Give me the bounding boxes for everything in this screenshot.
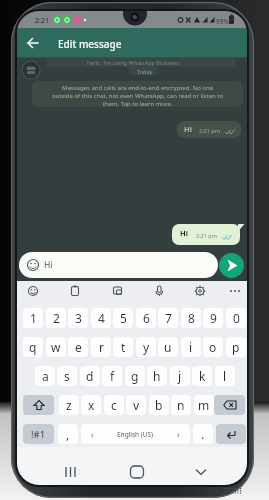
button[interactable]: g [125,366,145,386]
button[interactable]: k [192,366,212,386]
button[interactable]: ‹ [81,424,190,444]
staticText: 3 [75,310,82,326]
button[interactable] [192,283,208,299]
button[interactable]: 6 [136,308,156,328]
button[interactable]: 3 [68,308,88,328]
button[interactable]: Hi [19,252,218,278]
staticText: z [66,397,72,413]
staticText: Messages and calls are end-to-end encryp… [32,84,243,107]
staticText: u [164,339,172,355]
button[interactable]: 2 [46,308,66,328]
button[interactable]: b [149,395,169,415]
button[interactable]: m [194,395,214,415]
button[interactable]: 4 [91,308,111,328]
button[interactable]: e [68,337,88,357]
button[interactable] [216,424,246,444]
button[interactable]: t [113,337,133,357]
button[interactable]: 5 [113,308,133,328]
staticText: 2:21 pm [196,232,217,239]
staticText: f [110,368,115,384]
staticText: 4 [98,310,105,326]
staticText: v [133,397,140,413]
button[interactable]: a [35,366,55,386]
button[interactable] [193,465,209,481]
staticText: j [178,368,182,384]
button[interactable] [214,395,245,415]
button[interactable]: c [104,395,124,415]
button[interactable]: d [80,366,100,386]
button[interactable] [227,283,243,299]
staticText: Hi [180,228,188,238]
button[interactable]: l [215,366,235,386]
staticText: m [198,397,210,413]
button[interactable]: . [193,424,213,444]
staticText: a [42,368,49,384]
button[interactable]: q [23,337,43,357]
staticText: 7 [165,310,172,326]
button[interactable]: 0 [226,308,246,328]
button[interactable] [151,283,167,299]
staticText: Hello, I'm using WhatsApp Business. [87,59,181,66]
button[interactable]: p [226,337,246,357]
staticText: 99% [216,17,229,26]
staticText: Hi [44,259,53,271]
button[interactable] [25,283,41,299]
button[interactable]: i [181,337,201,357]
staticText: 9 [210,310,217,326]
button[interactable] [110,283,126,299]
button[interactable]: , [58,424,78,444]
button[interactable]: r [91,337,111,357]
button[interactable]: j [170,366,190,386]
staticText: r [99,339,104,355]
staticText: h [153,368,161,384]
button[interactable]: !#1 [23,424,54,444]
button[interactable]: w [46,337,66,357]
staticText: 5 [120,310,127,326]
button[interactable]: f [102,366,122,386]
staticText: , [66,426,70,442]
staticText: d [86,368,94,384]
staticText: b [155,397,163,413]
staticText: 2:21 pm [199,127,220,134]
button[interactable] [129,465,145,481]
button[interactable]: v [126,395,146,415]
staticText: g [131,368,139,384]
staticText: t [121,339,126,355]
staticText: s [64,368,70,384]
button[interactable]: s [57,366,77,386]
staticText: l [223,368,227,384]
button[interactable] [219,253,244,278]
button[interactable]: u [158,337,178,357]
staticText: p [232,339,240,355]
staticText: k [199,368,206,384]
button[interactable]: n [171,395,191,415]
button[interactable]: y [136,337,156,357]
staticText: › [177,429,180,440]
staticText: 1 [30,310,37,326]
staticText: 6 [143,310,150,326]
button[interactable] [67,283,83,299]
button[interactable] [25,35,41,51]
button[interactable]: 9 [203,308,223,328]
staticText: e [75,339,82,355]
button[interactable]: 8 [181,308,201,328]
staticText: w [51,339,61,355]
button[interactable]: 7 [158,308,178,328]
staticText: 8 [188,310,195,326]
staticText: Today [137,68,153,75]
button[interactable]: 1 [23,308,43,328]
button[interactable] [59,465,75,481]
button[interactable]: o [203,337,223,357]
staticText: x [88,397,95,413]
button[interactable]: x [81,395,101,415]
button[interactable]: h [147,366,167,386]
button[interactable]: z [59,395,79,415]
staticText: n [177,397,185,413]
button[interactable] [23,395,54,415]
staticText: y [143,339,150,355]
staticText: c [111,397,117,413]
staticText: ‹ [91,429,94,440]
staticText: 2 [53,310,60,326]
staticText: o [209,339,217,355]
staticText: English (US) [117,430,154,439]
